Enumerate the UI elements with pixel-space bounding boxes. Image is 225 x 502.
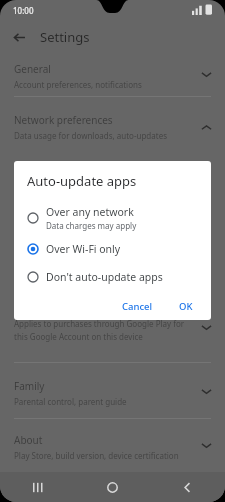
button[interactable]: Over any network xyxy=(14,203,211,233)
staticText: Data usage for downloads, auto-updates xyxy=(14,130,167,141)
button[interactable]: About xyxy=(0,432,225,464)
staticText: About xyxy=(14,433,43,447)
button[interactable]: Over Wi-Fi only xyxy=(14,238,211,260)
staticText: Parental control, parent guide xyxy=(14,396,127,407)
staticText: Auto-update apps xyxy=(27,172,137,190)
staticText: Over Wi-Fi only xyxy=(46,242,121,256)
staticText: OK xyxy=(179,300,193,313)
button[interactable]: Back xyxy=(8,26,30,48)
staticText: General xyxy=(14,62,51,76)
staticText: Over any network xyxy=(46,205,134,219)
button[interactable]: Don't auto-update apps xyxy=(14,266,211,288)
button[interactable]: Family xyxy=(0,378,225,410)
button[interactable]: Recents xyxy=(0,472,75,502)
staticText: Don't auto-update apps xyxy=(46,270,163,284)
staticText: Cancel xyxy=(122,300,153,313)
staticText: 10:00 xyxy=(13,5,34,16)
staticText: this Google Account on this device xyxy=(14,331,143,342)
button[interactable]: Home xyxy=(75,472,150,502)
button[interactable]: General xyxy=(0,61,225,93)
staticText: Settings xyxy=(40,28,90,46)
staticText: Account preferences, notifications xyxy=(14,79,142,90)
button[interactable]: Back xyxy=(0,22,225,52)
staticText: Data charges may apply xyxy=(46,220,137,231)
button[interactable]: Network preferences xyxy=(0,112,225,144)
button[interactable]: OK xyxy=(172,297,200,316)
staticText: Network preferences xyxy=(14,113,113,127)
staticText: Family xyxy=(14,379,45,393)
staticText: Play Store, build version, device certif… xyxy=(14,450,179,461)
button[interactable]: Cancel xyxy=(115,297,160,316)
staticText: Applies to purchases through Google Play… xyxy=(14,318,185,329)
button[interactable]: Back xyxy=(150,472,225,502)
